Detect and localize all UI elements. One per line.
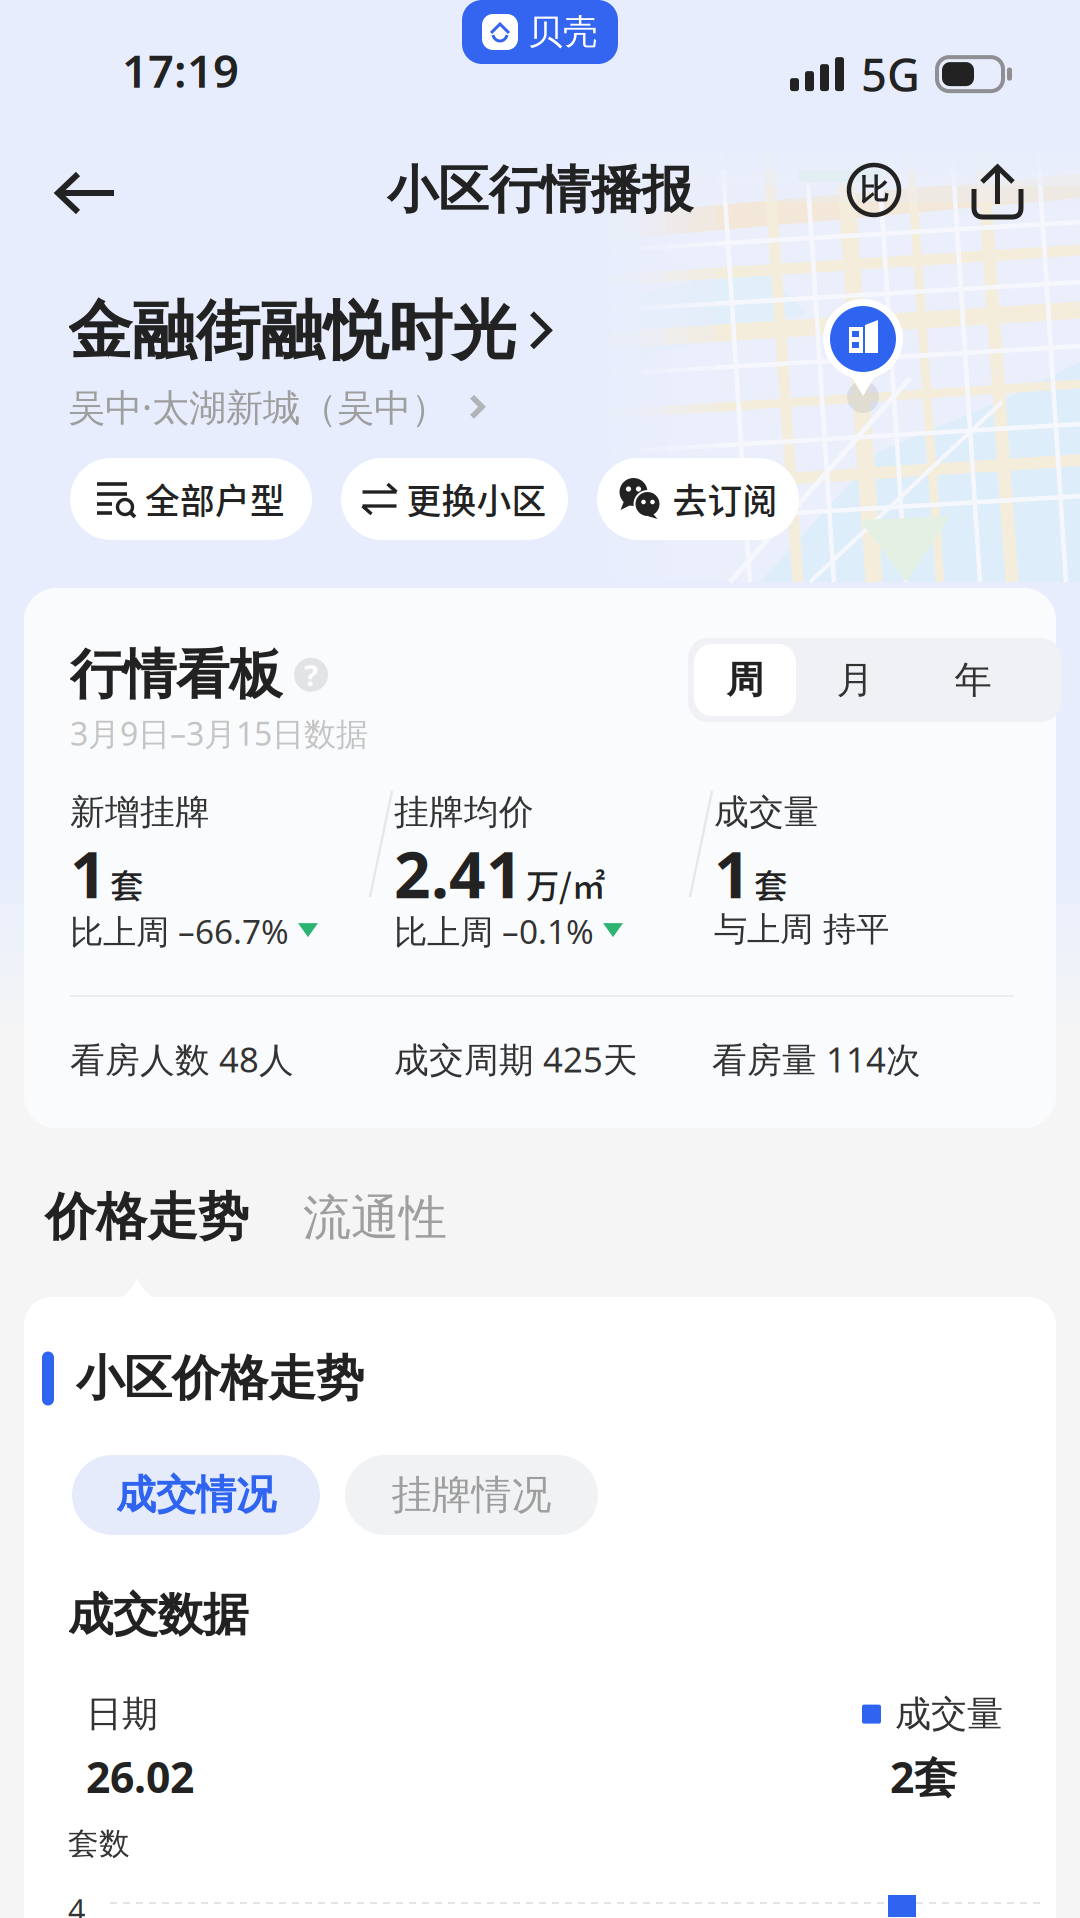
staticText: 日期 xyxy=(86,1692,158,1736)
button[interactable]: 更换小区 xyxy=(341,458,568,540)
staticText: 17:19 xyxy=(122,40,239,100)
button[interactable]: 全部户型 xyxy=(70,458,312,540)
staticText: 比 xyxy=(859,172,888,208)
staticText: 新增挂牌 xyxy=(70,791,210,834)
staticText: 全部户型 xyxy=(145,474,285,524)
staticText: 小区价格走势 xyxy=(76,1349,364,1408)
button[interactable]: 挂牌情况 xyxy=(345,1455,598,1535)
staticText: 金融街融悦时光 xyxy=(68,292,516,371)
staticText: 贝壳 xyxy=(528,11,598,53)
staticText: 4 xyxy=(68,1889,86,1918)
staticText: 成交量 xyxy=(895,1692,1003,1736)
staticText: 周 xyxy=(726,657,763,703)
button[interactable]: Compare prices xyxy=(846,162,902,218)
staticText: 2.41 xyxy=(394,831,523,916)
staticText: 万/㎡ xyxy=(526,860,605,908)
button[interactable]: 成交情况 xyxy=(72,1455,320,1535)
button[interactable]: 周 xyxy=(694,644,796,716)
button[interactable]: 月 xyxy=(796,644,914,716)
button[interactable]: 年 xyxy=(914,644,1032,716)
staticText: 1 xyxy=(70,831,107,916)
staticText: 看房量 114次 xyxy=(712,1036,921,1082)
staticText: 与上周 持平 xyxy=(714,909,889,950)
staticText: 价格走势 xyxy=(45,1186,249,1248)
button[interactable]: Back xyxy=(54,166,118,220)
staticText: 流通性 xyxy=(303,1188,447,1247)
staticText: 3月9日–3月15日数据 xyxy=(70,712,368,754)
staticText: 比上周 –0.1% xyxy=(394,909,594,953)
staticText: 比上周 –66.7% xyxy=(70,909,289,953)
button[interactable]: Share xyxy=(971,164,1025,220)
staticText: 成交周期 425天 xyxy=(394,1036,638,1082)
button[interactable]: 价格走势 xyxy=(45,1186,249,1248)
button[interactable]: 流通性 xyxy=(303,1188,447,1247)
staticText: 小区行情播报 xyxy=(387,159,693,221)
staticText: 年 xyxy=(954,657,991,703)
staticText: 去订阅 xyxy=(672,474,777,524)
staticText: 行情看板 xyxy=(70,642,282,707)
staticText: 挂牌情况 xyxy=(391,1470,551,1519)
staticText: 套 xyxy=(754,860,787,908)
staticText: 套数 xyxy=(68,1825,130,1863)
staticText: 挂牌均价 xyxy=(394,791,534,834)
staticText: 看房人数 48人 xyxy=(70,1036,294,1082)
button[interactable]: 去订阅 xyxy=(597,458,799,540)
staticText: 26.02 xyxy=(86,1748,194,1805)
staticText: 5G xyxy=(861,44,920,104)
button[interactable]: 吴中·太湖新城（吴中） xyxy=(68,382,487,432)
button[interactable]: 金融街融悦时光 xyxy=(68,292,554,371)
staticText: ? xyxy=(304,655,318,694)
staticText: 吴中·太湖新城（吴中） xyxy=(68,382,448,432)
staticText: 1 xyxy=(714,831,751,916)
staticText: 2套 xyxy=(890,1748,957,1805)
staticText: 月 xyxy=(836,657,873,703)
staticText: 更换小区 xyxy=(406,474,546,524)
staticText: 成交量 xyxy=(714,791,819,834)
staticText: 套 xyxy=(110,860,143,908)
staticText: 成交数据 xyxy=(68,1587,248,1643)
staticText: 成交情况 xyxy=(116,1470,276,1519)
